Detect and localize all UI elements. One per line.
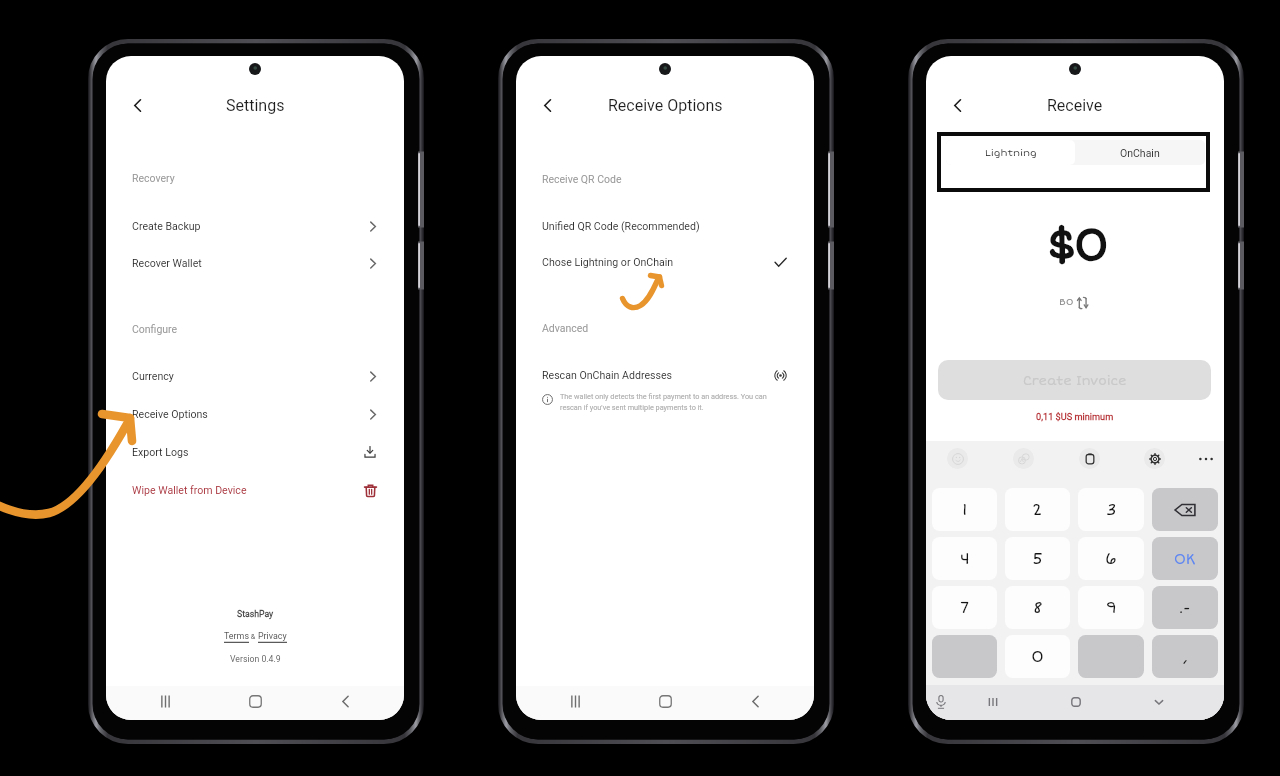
staticText: OK (1174, 550, 1196, 568)
staticText: Receive QR Code (542, 173, 622, 185)
staticText: 1 (962, 500, 968, 520)
button[interactable]: Switch currency unit (926, 292, 1224, 312)
staticText: Configure (132, 323, 178, 335)
other: Export Logs (362, 444, 378, 460)
staticText: Currency (132, 370, 174, 382)
button[interactable]: 7 (932, 586, 997, 629)
staticText: Advanced (542, 322, 589, 334)
button[interactable]: 1 (932, 488, 997, 531)
staticText: Create Invoice (1023, 373, 1127, 388)
staticText: OnChain (1120, 147, 1160, 159)
button[interactable]: Wipe Wallet from Device (106, 473, 404, 507)
button[interactable]: Home (225, 687, 285, 715)
button[interactable]: Home (1063, 689, 1089, 715)
button[interactable]: Voice input (928, 689, 954, 715)
button[interactable]: Back (530, 88, 564, 122)
staticText: Unified QR Code (Recommended) (542, 220, 700, 232)
button[interactable]: Recents (980, 689, 1006, 715)
button[interactable]: Hide keyboard (1146, 689, 1172, 715)
staticText: B0 (1059, 296, 1074, 308)
button[interactable]: 6 (1078, 537, 1144, 580)
button[interactable]: Back (940, 88, 974, 122)
button[interactable]: Create Invoice (938, 360, 1211, 400)
button[interactable]: Create Backup (106, 209, 404, 243)
staticText: Receive Options (608, 96, 723, 115)
staticText: Wipe Wallet from Device (132, 484, 247, 496)
staticText: StashPay (237, 609, 274, 619)
staticText: 5 (1032, 549, 1044, 569)
staticText: Chose Lightning or OnChain (542, 256, 674, 268)
staticText: 7 (960, 598, 970, 618)
button[interactable]: Blank key (932, 635, 997, 678)
button[interactable]: Delete (1152, 488, 1218, 531)
staticText: .- (1179, 599, 1191, 617)
button[interactable]: .- (1152, 586, 1218, 629)
button[interactable]: 3 (1078, 488, 1144, 531)
button[interactable]: Receive Options (106, 397, 404, 431)
staticText: The wallet only detects the first paymen… (560, 392, 788, 412)
button[interactable]: OnChain (1075, 140, 1205, 165)
staticText: 4 (960, 549, 970, 569)
other: Rescan (772, 367, 788, 383)
button[interactable]: Clipboard (1079, 448, 1100, 469)
staticText: Recover Wallet (132, 257, 202, 269)
button[interactable]: OK (1152, 537, 1218, 580)
button[interactable]: 4 (932, 537, 997, 580)
staticText: Privacy (258, 631, 287, 641)
button[interactable]: 0 (1005, 635, 1070, 678)
button[interactable]: Keyboard settings (1144, 448, 1165, 469)
button[interactable]: Privacy (258, 626, 287, 646)
button[interactable]: 5 (1005, 537, 1070, 580)
staticText: Version 0.4.9 (230, 654, 281, 664)
button[interactable]: Emoji (947, 448, 968, 469)
staticText: Rescan OnChain Addresses (542, 369, 673, 381)
button[interactable]: Rescan OnChain Addresses (516, 358, 814, 392)
staticText: 3 (1106, 500, 1117, 520)
staticText: 2 (1032, 500, 1043, 520)
button[interactable]: Blank key (1078, 635, 1144, 678)
staticText: 8 (1033, 598, 1043, 618)
button[interactable]: , (1152, 635, 1218, 678)
button[interactable]: Back (710, 687, 800, 715)
button[interactable]: Unified QR Code (Recommended) (516, 209, 814, 243)
button[interactable]: Recents (530, 687, 620, 715)
staticText: 6 (1105, 549, 1117, 569)
button[interactable]: 2 (1005, 488, 1070, 531)
button[interactable]: Back (120, 88, 154, 122)
staticText: , (1183, 648, 1188, 666)
button[interactable]: Export Logs (106, 435, 404, 469)
staticText: Lightning (985, 147, 1037, 159)
button[interactable]: Chose Lightning or OnChain (516, 245, 814, 279)
staticText: & (249, 632, 258, 640)
button[interactable]: Back (300, 687, 390, 715)
button[interactable]: Recents (120, 687, 210, 715)
staticText: Receive (1047, 96, 1103, 115)
button[interactable]: More options (1195, 448, 1216, 469)
staticText: Receive Options (132, 408, 208, 420)
staticText: Terms (224, 631, 249, 641)
button[interactable]: Terms (224, 626, 249, 646)
staticText: 9 (1106, 598, 1117, 618)
button[interactable]: Translate (1013, 448, 1034, 469)
staticText: $0 (1046, 217, 1105, 274)
staticText: 0,11 $US minimum (1036, 411, 1114, 422)
other: Wipe Wallet (362, 482, 378, 498)
staticText: Recovery (132, 172, 175, 184)
staticText: Create Backup (132, 220, 201, 232)
button[interactable]: Recover Wallet (106, 246, 404, 280)
staticText: Settings (226, 96, 285, 115)
staticText: 0 (1031, 647, 1044, 667)
button[interactable]: Home (635, 687, 695, 715)
button[interactable]: 9 (1078, 586, 1144, 629)
button[interactable]: 8 (1005, 586, 1070, 629)
staticText: Export Logs (132, 446, 189, 458)
button[interactable]: Currency (106, 359, 404, 393)
button[interactable]: Lightning (946, 140, 1075, 165)
